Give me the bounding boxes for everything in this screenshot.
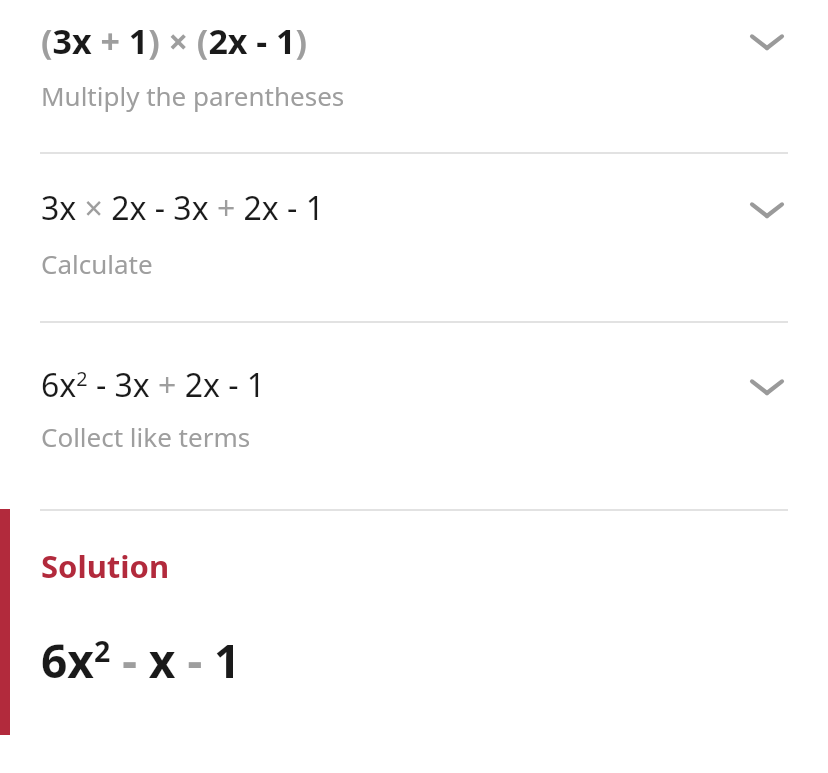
staticText: (3x + 1) × (2x - 1) [41, 18, 308, 64]
staticText: 3x × 2x - 3x + 2x - 1 [41, 186, 325, 230]
button[interactable]: 6x2 - 3x + 2x - 1 [0, 323, 828, 509]
staticText: Collect like terms [41, 419, 251, 454]
button[interactable]: 3x × 2x - 3x + 2x - 1 [0, 154, 828, 321]
button[interactable]: (3x + 1) × (2x - 1) [0, 0, 828, 152]
button[interactable]: Expand step [739, 182, 795, 238]
staticText: Solution [41, 545, 170, 587]
staticText: 6x2 - x - 1 [41, 629, 241, 692]
staticText: 6x2 - 3x + 2x - 1 [41, 363, 266, 407]
button[interactable]: Solution [0, 511, 828, 692]
staticText: Multiply the parentheses [41, 78, 345, 113]
staticText: Calculate [41, 246, 153, 281]
button[interactable]: Expand step [739, 14, 795, 70]
button[interactable]: Expand step [739, 359, 795, 415]
